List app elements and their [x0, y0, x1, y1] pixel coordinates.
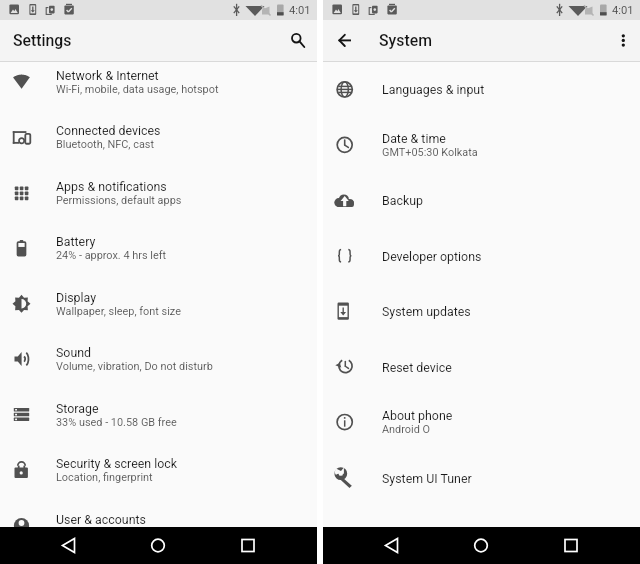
staticText: Languages & input [382, 82, 485, 97]
staticText: Battery [56, 234, 96, 249]
staticText: Security & screen lock [56, 456, 178, 471]
staticText: Sound [56, 345, 92, 360]
button[interactable]: Connected devices [0, 109, 317, 165]
button[interactable]: Battery [0, 220, 317, 276]
staticText: Android O [382, 423, 431, 436]
button[interactable]: Developer options [323, 228, 640, 284]
button[interactable]: About phone [323, 394, 640, 450]
button[interactable]: Apps & notifications [0, 165, 317, 221]
staticText: Apps & notifications [56, 179, 167, 194]
button[interactable]: Reset device [323, 339, 640, 395]
staticText: Backup [382, 193, 424, 208]
staticText: Volume, vibration, Do not disturb [56, 360, 213, 373]
button[interactable]: Security & screen lock [0, 442, 317, 498]
staticText: Connected devices [56, 123, 161, 138]
staticText: 33% used - 10.58 GB free [56, 416, 177, 429]
button[interactable]: Sound [0, 331, 317, 387]
staticText: System UI Tuner [382, 470, 472, 485]
staticText: Reset device [382, 360, 452, 375]
staticText: About phone [382, 408, 453, 423]
staticText: Wi-Fi, mobile, data usage, hotspot [56, 83, 219, 96]
button[interactable]: User & accounts [0, 498, 317, 527]
staticText: 4:01 [289, 4, 311, 17]
staticText: Storage [56, 401, 99, 416]
staticText: Network & Internet [56, 68, 159, 83]
staticText: System [379, 31, 432, 50]
button[interactable]: Languages & input [323, 62, 640, 117]
button[interactable]: Search [283, 26, 313, 56]
staticText: GMT+05:30 Kolkata [382, 146, 478, 159]
staticText: User & accounts [56, 512, 146, 527]
staticText: Wallpaper, sleep, font size [56, 305, 181, 318]
staticText: 4:01 [612, 4, 634, 17]
staticText: Date & time [382, 131, 446, 146]
staticText: Bluetooth, NFC, cast [56, 138, 155, 151]
staticText: System updates [382, 304, 471, 319]
button[interactable]: System UI Tuner [323, 449, 640, 505]
staticText: Developer options [382, 249, 482, 264]
button[interactable]: System updates [323, 283, 640, 339]
staticText: Settings [13, 31, 72, 50]
staticText: Location, fingerprint [56, 471, 153, 484]
button[interactable]: Storage [0, 387, 317, 443]
staticText: Display [56, 290, 97, 305]
staticText: Permissions, default apps [56, 194, 182, 207]
button[interactable]: Backup [323, 172, 640, 228]
button[interactable]: More options [606, 26, 636, 56]
button[interactable]: Display [0, 276, 317, 332]
button[interactable]: Back [330, 26, 360, 56]
button[interactable]: Date & time [323, 117, 640, 173]
staticText: 24% - approx. 4 hrs left [56, 249, 167, 262]
button[interactable]: Network & Internet [0, 62, 317, 110]
